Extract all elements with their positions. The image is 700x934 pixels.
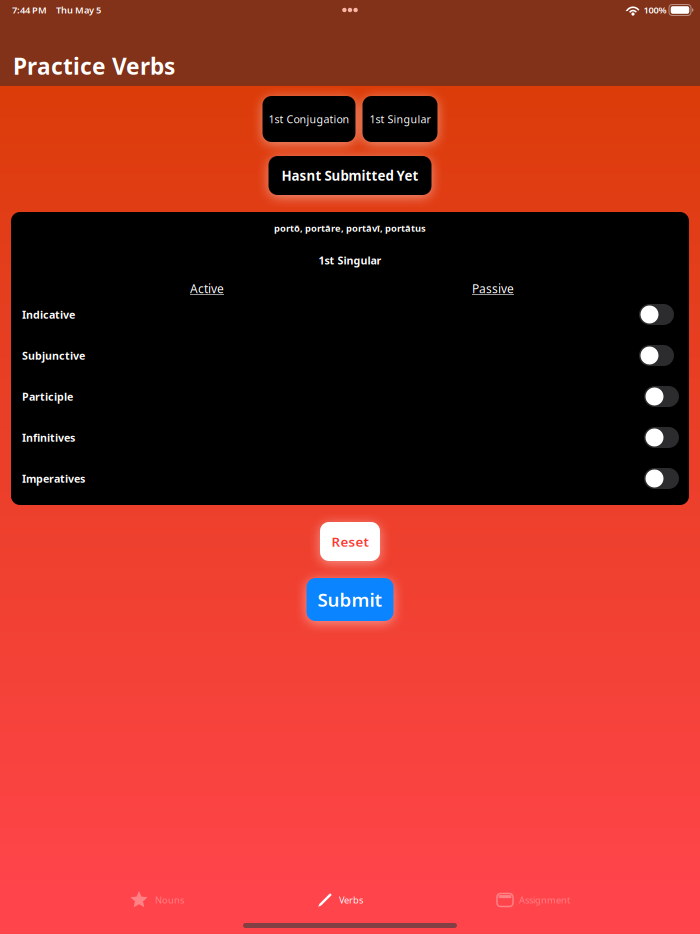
- button[interactable]: Nouns: [130, 886, 184, 914]
- button[interactable]: Participle: [22, 383, 689, 409]
- staticText: Nouns: [155, 894, 184, 906]
- staticText: Reset: [331, 533, 368, 550]
- staticText: Verbs: [339, 894, 363, 906]
- staticText: Imperatives: [22, 471, 85, 486]
- staticText: 100%: [643, 4, 666, 16]
- staticText: portō, portāre, portāvī, portātus: [274, 222, 426, 234]
- staticText: Active: [190, 281, 224, 296]
- staticText: Subjunctive: [22, 348, 85, 363]
- staticText: 1st Singular: [318, 253, 381, 268]
- button[interactable]: Submit: [306, 578, 393, 621]
- button[interactable]: Hasnt Submitted Yet: [268, 156, 431, 195]
- button[interactable]: 1st Singular: [362, 96, 437, 142]
- staticText: Practice Verbs: [13, 51, 175, 81]
- button[interactable]: Infinitives: [22, 424, 689, 450]
- staticText: Passive: [472, 281, 514, 296]
- button[interactable]: Imperatives: [22, 465, 689, 491]
- staticText: Infinitives: [22, 430, 75, 445]
- staticText: Indicative: [22, 307, 75, 322]
- button[interactable]: Verbs: [318, 886, 363, 914]
- button[interactable]: Indicative: [22, 301, 689, 327]
- button[interactable]: Assignment: [497, 886, 570, 914]
- staticText: Assignment: [519, 894, 570, 906]
- button[interactable]: 1st Conjugation: [262, 96, 355, 142]
- staticText: 1st Conjugation: [268, 112, 349, 126]
- staticText: 1st Singular: [369, 112, 430, 126]
- button[interactable]: Reset: [320, 522, 380, 561]
- staticText: Submit: [317, 587, 382, 612]
- staticText: Participle: [22, 389, 73, 404]
- staticText: 7:44 PM: [12, 4, 47, 16]
- button[interactable]: Subjunctive: [22, 342, 689, 368]
- staticText: Thu May 5: [56, 4, 101, 16]
- staticText: Hasnt Submitted Yet: [281, 167, 418, 184]
